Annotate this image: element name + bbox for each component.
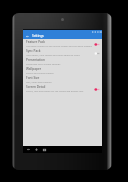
staticText: Customize your system settings	[26, 63, 61, 66]
button[interactable]: Font Size	[23, 75, 102, 84]
button[interactable]: Back	[24, 146, 32, 153]
staticText: Colors and sound themes	[26, 72, 54, 75]
staticText: Your library, your media and more added …	[26, 54, 80, 57]
staticText: Sync Pack	[26, 49, 41, 53]
staticText: Wallpaper	[26, 67, 41, 71]
staticText: Settings	[32, 34, 44, 38]
button[interactable]: Feature Pack	[23, 39, 102, 48]
staticText: Font Size	[26, 76, 40, 80]
staticText: Presentation	[26, 58, 45, 62]
staticText: Colors, text and profile for the connect…	[26, 90, 84, 93]
button[interactable]: Recents	[40, 146, 48, 153]
staticText: Tiny, small and medium	[26, 81, 52, 84]
staticText: Screen Detail	[26, 85, 46, 89]
button[interactable]: Presentation	[23, 57, 102, 66]
staticText: Feature Pack	[26, 40, 46, 44]
button[interactable]: Sync Pack	[23, 48, 102, 57]
button[interactable]: Home	[32, 146, 40, 153]
staticText: Add more content to the unlock screen an…	[26, 45, 92, 48]
button[interactable]: Screen Detail	[23, 84, 102, 93]
button[interactable]: Navigate up	[23, 33, 32, 39]
button[interactable]: Wallpaper	[23, 66, 102, 75]
